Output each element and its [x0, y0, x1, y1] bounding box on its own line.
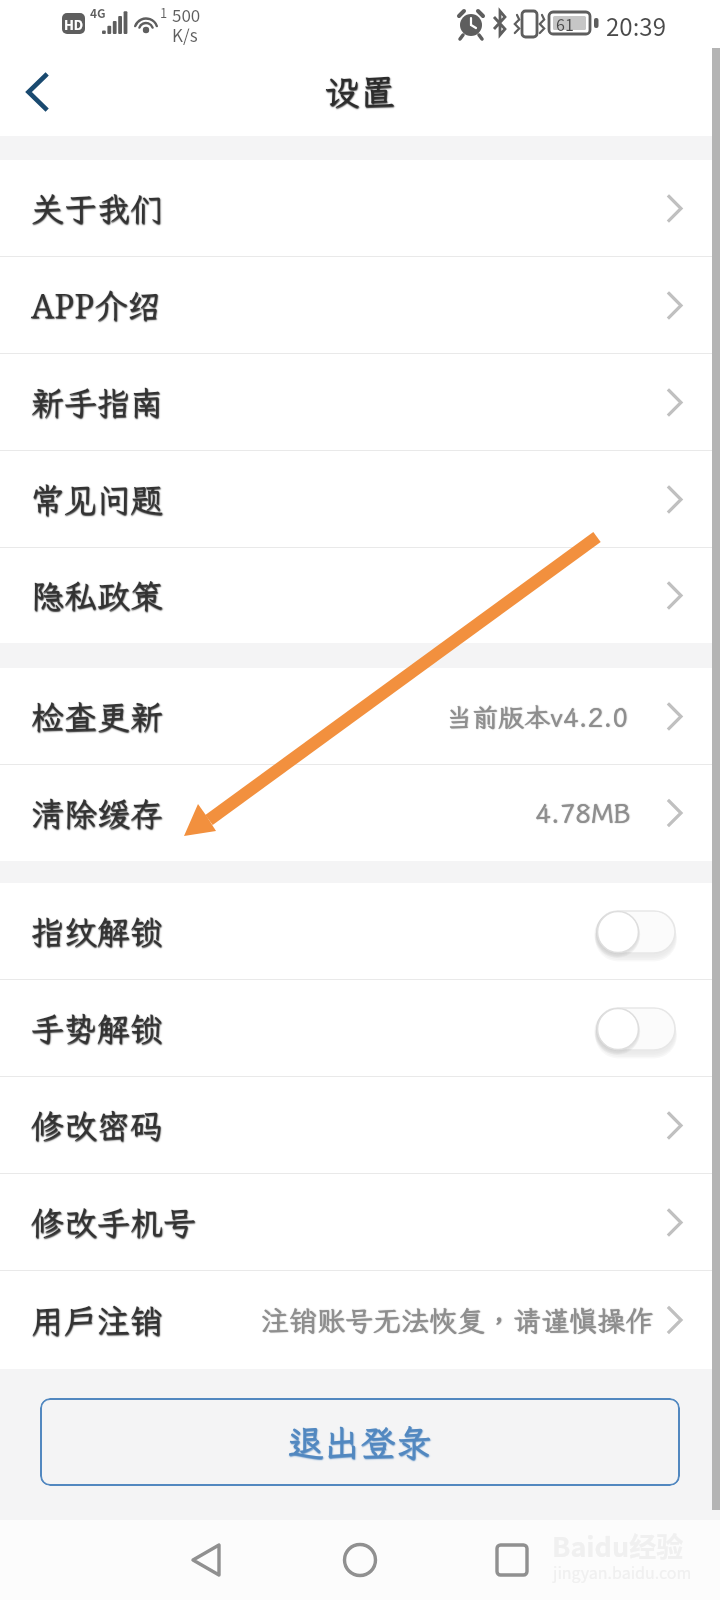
staticText: Baidu经验	[552, 1526, 684, 1565]
staticText: 4G	[90, 4, 106, 21]
staticText: 1	[160, 3, 168, 22]
button[interactable]: 常见问题	[0, 451, 720, 548]
button[interactable]: 修改密码	[0, 1077, 720, 1174]
staticText: 修改手机号	[31, 1201, 196, 1244]
staticText: 500 K/s	[172, 2, 201, 47]
staticText: 4.78MB	[535, 796, 631, 830]
button[interactable]: 退出登录	[40, 1398, 680, 1486]
button[interactable]: 关于我们	[0, 160, 720, 257]
button[interactable]: APP介绍	[0, 257, 720, 354]
button[interactable]: 新手指南	[0, 354, 720, 451]
button[interactable]: Back	[0, 48, 76, 136]
button[interactable]: 修改手机号	[0, 1174, 720, 1271]
staticText: 注销账号无法恢复，请谨慎操作	[261, 1302, 654, 1339]
button[interactable]: 清除缓存	[0, 765, 720, 861]
button[interactable]: 手势解锁	[589, 1000, 683, 1058]
button[interactable]: 手势解锁	[0, 980, 720, 1077]
staticText: 检查更新	[31, 695, 163, 738]
staticText: 手势解锁	[31, 1007, 163, 1050]
button[interactable]: 指纹解锁	[589, 903, 683, 961]
staticText: 清除缓存	[31, 792, 163, 835]
button[interactable]: 指纹解锁	[0, 883, 720, 980]
staticText: 常见问题	[31, 478, 163, 521]
button[interactable]: Recents	[472, 1520, 552, 1600]
staticText: HD	[64, 15, 84, 34]
staticText: 用户注销	[31, 1299, 163, 1342]
button[interactable]: Home	[320, 1520, 400, 1600]
staticText: 隐私政策	[31, 574, 163, 617]
button[interactable]: 检查更新	[0, 668, 720, 765]
button[interactable]: 用户注销	[0, 1271, 720, 1369]
staticText: 新手指南	[31, 381, 163, 424]
staticText: 61	[556, 12, 574, 35]
staticText: 当前版本v4.2.0	[446, 700, 628, 734]
button[interactable]: 隐私政策	[0, 548, 720, 643]
staticText: 20:39	[606, 8, 666, 43]
staticText: 修改密码	[31, 1104, 163, 1147]
staticText: jingyan.baidu.com	[553, 1560, 692, 1583]
staticText: 退出登录	[288, 1419, 433, 1466]
button[interactable]: Back	[167, 1520, 247, 1600]
staticText: 设置	[324, 68, 397, 115]
staticText: APP介绍	[31, 283, 161, 328]
staticText: 指纹解锁	[31, 910, 163, 953]
staticText: 关于我们	[31, 187, 163, 230]
